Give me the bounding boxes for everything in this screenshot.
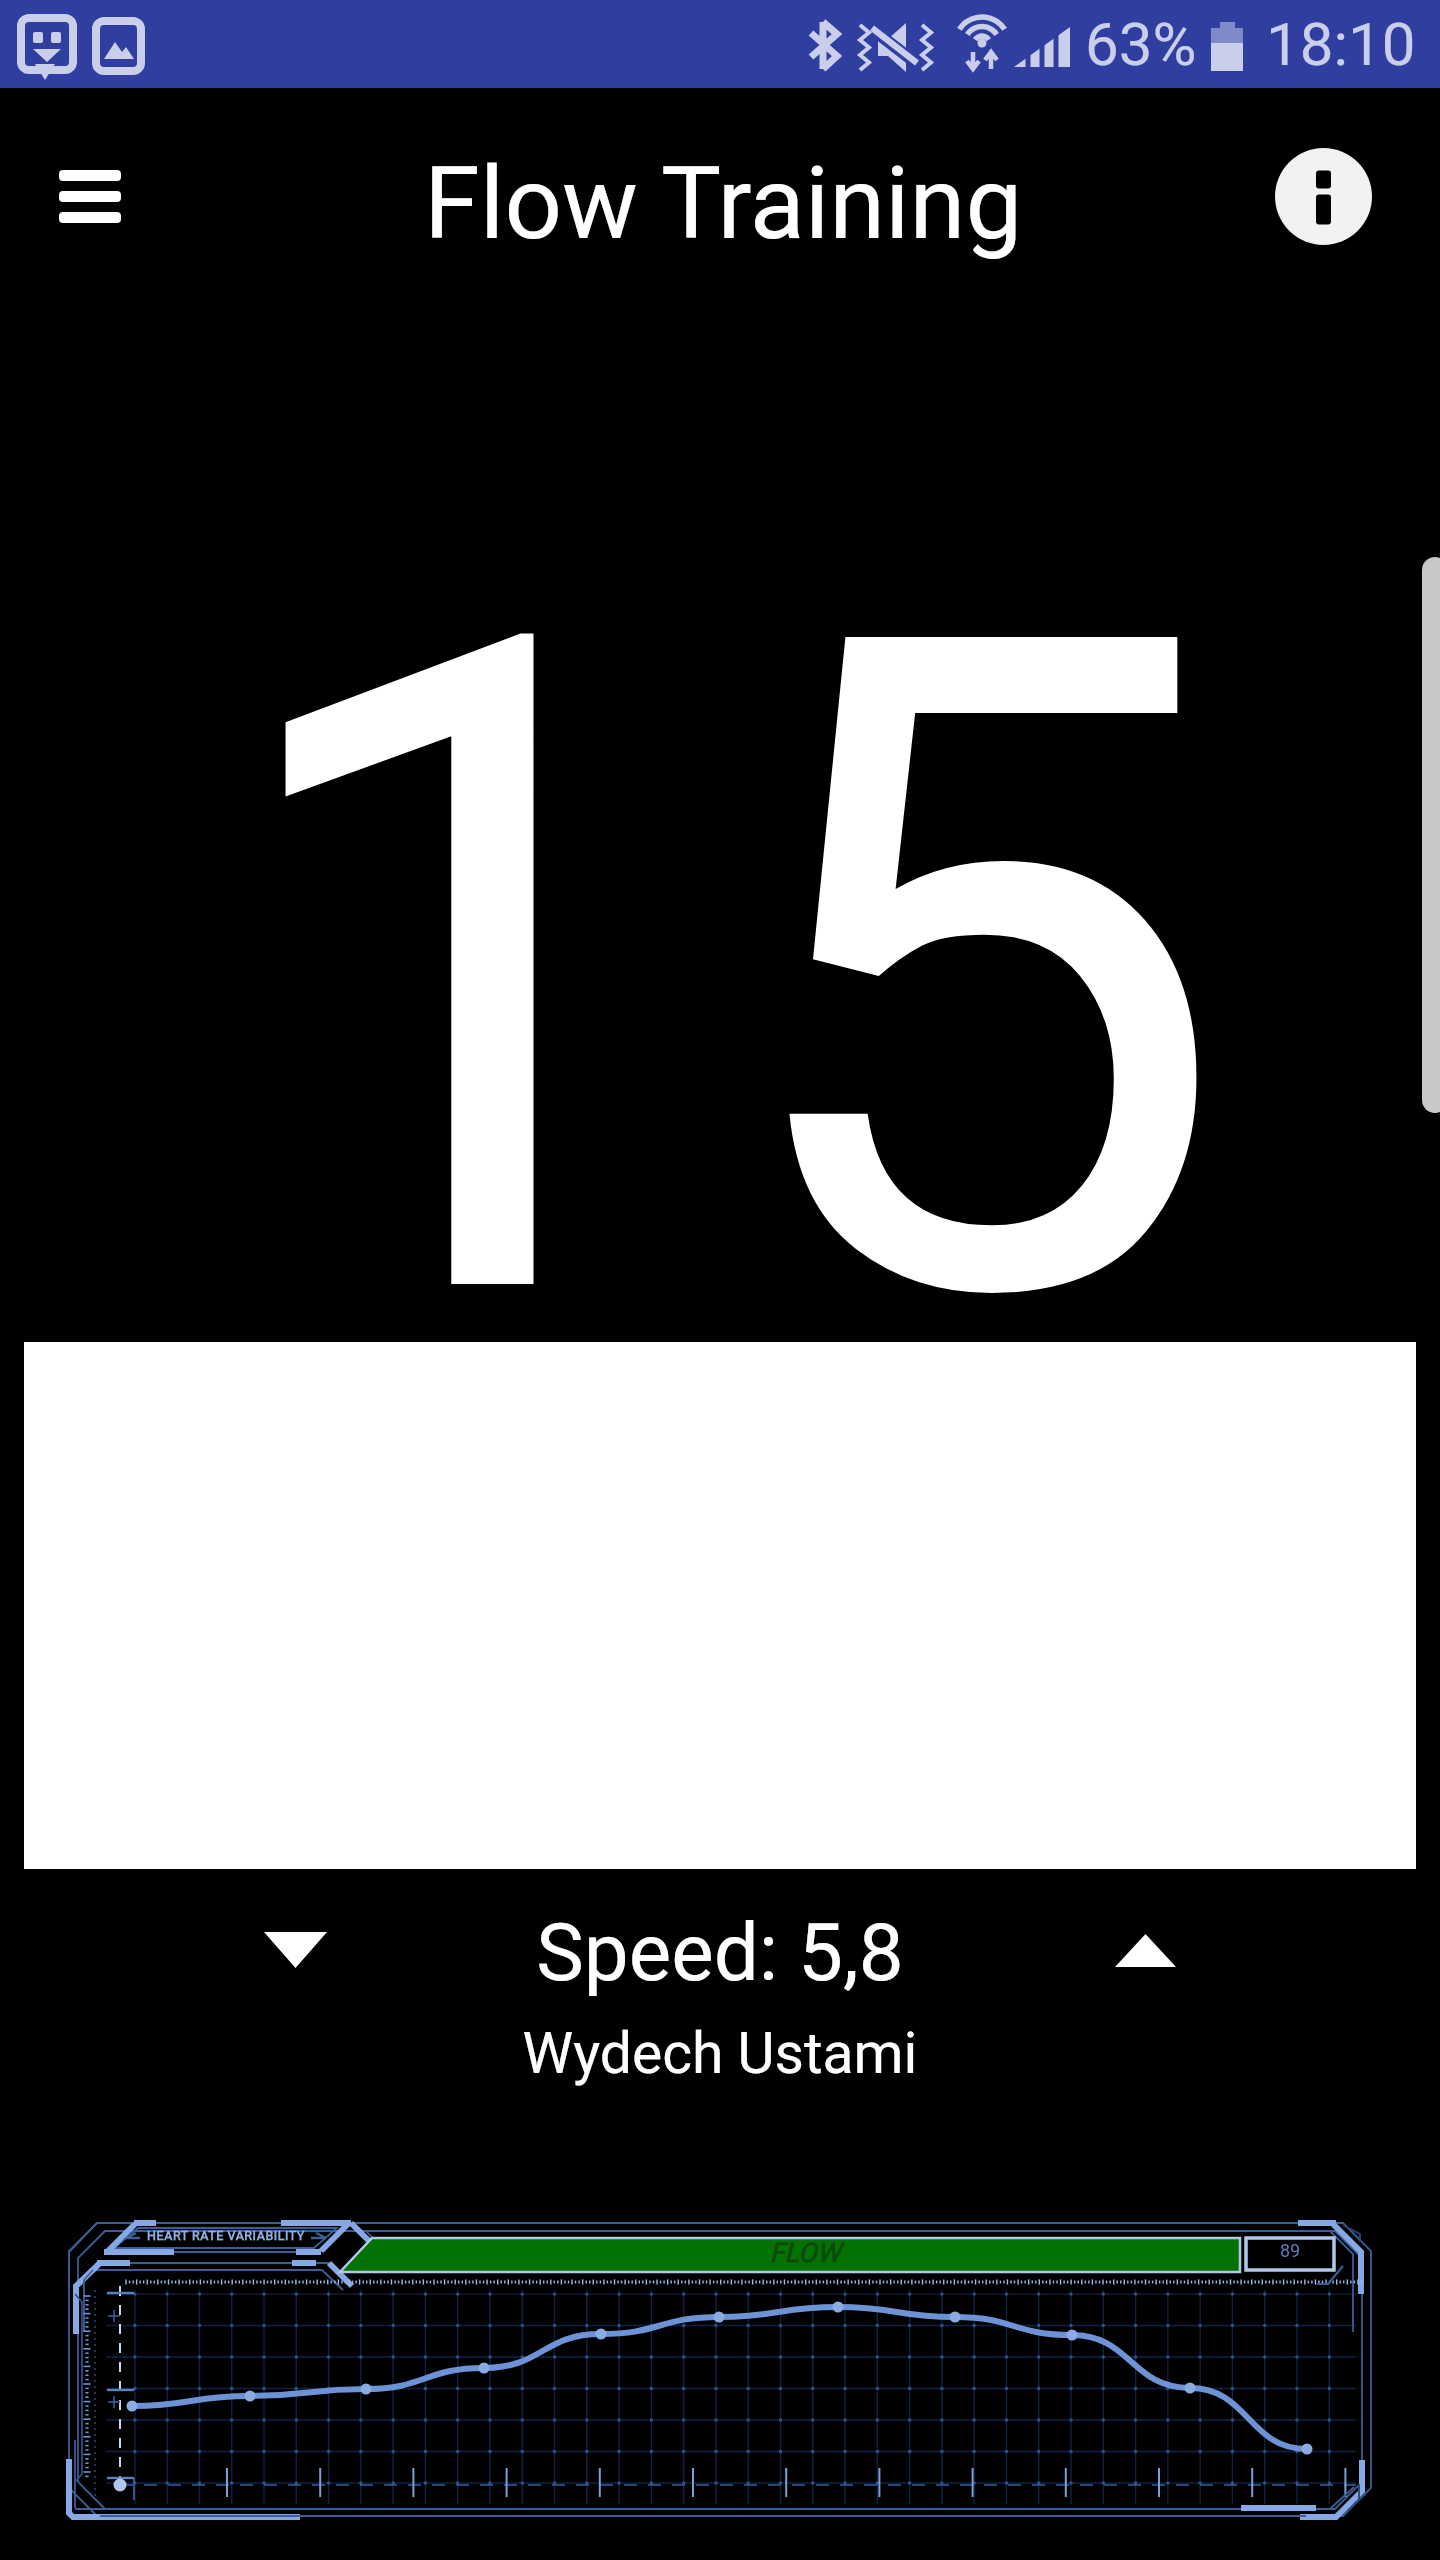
staticText: 63%	[1085, 9, 1197, 79]
staticText: HEART RATE VARIABILITY	[142, 2228, 310, 2250]
button[interactable]: Increase speed	[1085, 1900, 1205, 2000]
staticText: Flow Training	[424, 144, 1023, 262]
staticText: FLOW	[730, 2237, 880, 2271]
staticText: Wydech Ustami	[0, 2020, 1440, 2100]
staticText: 18:10	[1266, 9, 1416, 79]
staticText: 89	[1246, 2240, 1334, 2270]
staticText: 15	[1, 440, 1440, 1440]
staticText: Speed: 5,8	[0, 1906, 1440, 2016]
button[interactable]: Info	[1269, 142, 1377, 250]
button[interactable]: Menu	[40, 146, 140, 246]
button[interactable]: Decrease speed	[235, 1900, 355, 2000]
